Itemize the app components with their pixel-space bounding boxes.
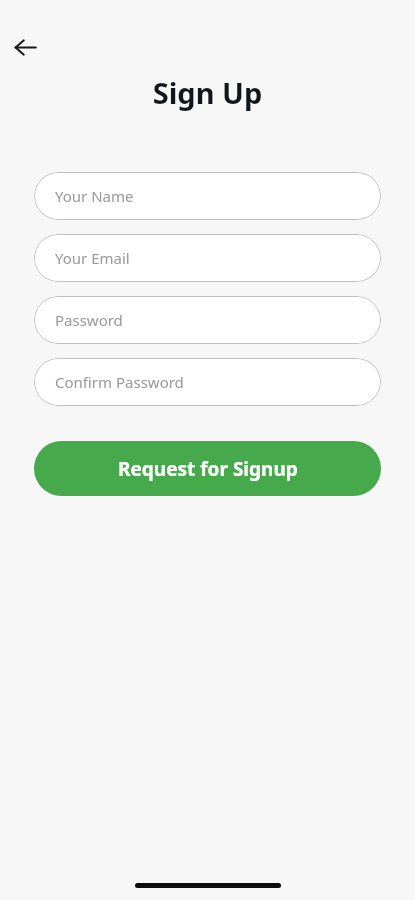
button[interactable]: Request for Signup [34, 441, 381, 496]
staticText: Password [55, 310, 123, 330]
button[interactable]: Back [8, 30, 42, 64]
button[interactable]: Your Name [34, 172, 381, 220]
staticText: Your Name [55, 186, 134, 206]
staticText: Confirm Password [55, 372, 184, 392]
staticText: Sign Up [0, 73, 415, 112]
staticText: Your Email [55, 248, 130, 268]
staticText: Request for Signup [118, 456, 298, 482]
button[interactable]: Your Email [34, 234, 381, 282]
button[interactable]: Confirm Password [34, 358, 381, 406]
button[interactable]: Password [34, 296, 381, 344]
